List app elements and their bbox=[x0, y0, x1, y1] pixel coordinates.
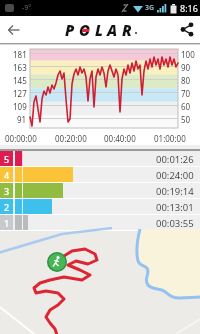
staticText: 109 bbox=[13, 101, 27, 112]
button[interactable]: 4 bbox=[0, 167, 200, 183]
button[interactable] bbox=[174, 16, 200, 43]
staticText: 60 bbox=[181, 101, 191, 112]
staticText: 00:19:14 bbox=[156, 185, 194, 198]
staticText: 8:16 bbox=[180, 2, 198, 14]
staticText: 50 bbox=[181, 114, 191, 125]
staticText: O bbox=[79, 20, 91, 40]
staticText: 181 bbox=[13, 49, 27, 60]
staticText: 3 bbox=[4, 185, 10, 197]
staticText: A bbox=[107, 20, 118, 40]
staticText: 90 bbox=[181, 62, 191, 73]
staticText: 00:03:55 bbox=[156, 217, 194, 230]
button[interactable]: 5 bbox=[0, 151, 200, 167]
staticText: 4 bbox=[4, 169, 10, 181]
staticText: 163 bbox=[13, 62, 27, 73]
staticText: P bbox=[65, 20, 75, 40]
staticText: 100 bbox=[181, 49, 195, 60]
staticText: 2 bbox=[4, 201, 10, 213]
staticText: -9° bbox=[22, 3, 32, 13]
button[interactable] bbox=[0, 16, 28, 43]
staticText: 70 bbox=[181, 88, 191, 99]
button[interactable]: 2 bbox=[0, 199, 200, 215]
staticText: R bbox=[122, 20, 132, 40]
staticText: 3G bbox=[145, 3, 155, 13]
staticText: 127 bbox=[13, 88, 27, 99]
button[interactable]: 1 bbox=[0, 215, 200, 231]
staticText: 00:13:01 bbox=[156, 201, 194, 214]
staticText: 00:01:26 bbox=[156, 153, 194, 166]
staticText: 91 bbox=[17, 114, 27, 125]
staticText: 80 bbox=[181, 75, 191, 86]
button[interactable]: 3 bbox=[0, 183, 200, 199]
staticText: 01:00:00 bbox=[154, 133, 186, 144]
staticText: 00:20:00 bbox=[55, 133, 87, 144]
staticText: 00:40:00 bbox=[104, 133, 136, 144]
staticText: L bbox=[95, 20, 103, 40]
button[interactable] bbox=[0, 231, 200, 334]
staticText: 5 bbox=[4, 153, 10, 165]
staticText: 00:24:00 bbox=[156, 169, 194, 182]
staticText: 1 bbox=[4, 217, 10, 229]
staticText: 145 bbox=[13, 75, 27, 86]
staticText: 00:00:00 bbox=[5, 133, 37, 144]
